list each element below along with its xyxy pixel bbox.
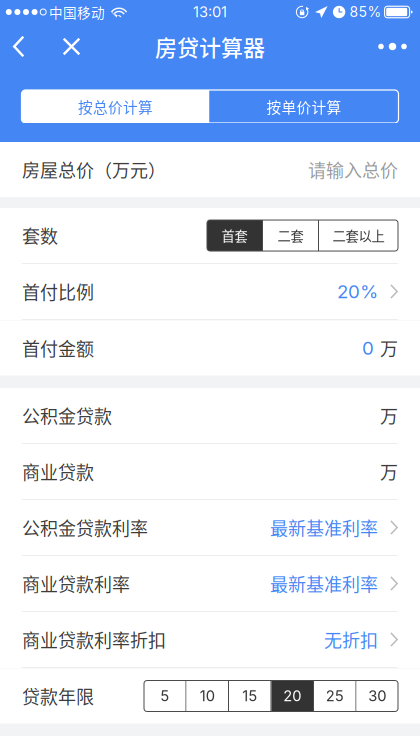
- button[interactable]: 商业贷款: [0, 444, 420, 499]
- button[interactable]: 按总价计算: [21, 90, 209, 123]
- staticText: 商业贷款: [22, 458, 94, 485]
- button[interactable]: 10: [186, 680, 228, 711]
- staticText: 13:01: [193, 3, 227, 21]
- staticText: 20: [283, 687, 301, 705]
- button[interactable]: 按单价计算: [209, 90, 398, 123]
- button[interactable]: 5: [144, 680, 185, 711]
- staticText: 房贷计算器: [155, 31, 265, 62]
- staticText: 25: [326, 687, 344, 705]
- staticText: 无折扣: [324, 626, 378, 653]
- button[interactable]: 20: [271, 680, 313, 711]
- button[interactable]: 商业贷款利率折扣: [0, 612, 420, 667]
- staticText: 请输入总价: [308, 156, 398, 183]
- staticText: 贷款年限: [22, 683, 94, 709]
- button[interactable]: 15: [229, 680, 270, 711]
- staticText: 85%: [350, 3, 382, 20]
- staticText: 公积金贷款: [22, 402, 112, 429]
- staticText: 0: [362, 337, 374, 359]
- staticText: 20%: [337, 280, 378, 303]
- button[interactable]: 更多: [365, 27, 420, 65]
- staticText: 套数: [22, 222, 58, 249]
- staticText: 万: [380, 458, 398, 485]
- staticText: 中国移动: [49, 2, 105, 22]
- button[interactable]: 25: [314, 680, 355, 711]
- staticText: 万: [380, 335, 398, 361]
- button[interactable]: 首付比例: [0, 264, 420, 319]
- button[interactable]: 30: [356, 680, 398, 711]
- staticText: 商业贷款利率: [22, 570, 130, 597]
- staticText: 首套: [221, 226, 247, 245]
- button[interactable]: 首付金额: [0, 320, 420, 375]
- staticText: 商业贷款利率折扣: [22, 626, 166, 653]
- staticText: 5: [160, 687, 169, 705]
- button[interactable]: 二套以上: [319, 220, 398, 251]
- button[interactable]: 首套: [207, 220, 262, 251]
- staticText: 万: [380, 402, 398, 429]
- staticText: 按单价计算: [266, 96, 341, 117]
- staticText: 房屋总价（万元）: [22, 156, 166, 183]
- staticText: 按总价计算: [78, 96, 153, 117]
- button[interactable]: 商业贷款利率: [0, 556, 420, 611]
- staticText: 公积金贷款利率: [22, 514, 148, 541]
- staticText: 10: [200, 687, 215, 705]
- staticText: 首付比例: [22, 278, 94, 305]
- staticText: 首付金额: [22, 335, 94, 361]
- button[interactable]: 二套: [263, 220, 318, 251]
- button[interactable]: 返回: [0, 28, 51, 64]
- button[interactable]: 关闭: [51, 28, 91, 64]
- staticText: 最新基准利率: [270, 514, 378, 541]
- button[interactable]: 房屋总价（万元）: [0, 142, 420, 197]
- button[interactable]: 公积金贷款利率: [0, 500, 420, 555]
- staticText: 二套以上: [332, 226, 384, 245]
- staticText: 30: [368, 687, 386, 705]
- staticText: 15: [242, 687, 257, 705]
- staticText: 最新基准利率: [270, 570, 378, 597]
- button[interactable]: 公积金贷款: [0, 388, 420, 443]
- staticText: 二套: [277, 226, 303, 245]
